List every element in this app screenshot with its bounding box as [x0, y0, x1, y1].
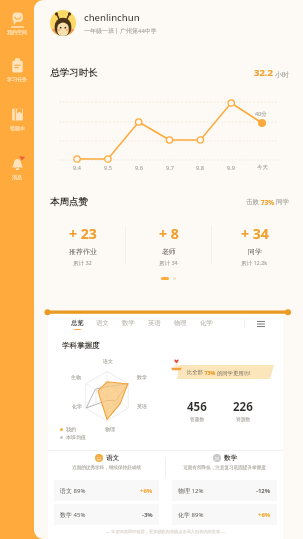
staticText: + 34: [241, 224, 269, 243]
button[interactable]: chenlinchun: [34, 0, 303, 46]
staticText: +6%: [140, 487, 153, 495]
staticText: 40分: [255, 110, 267, 118]
staticText: 推荐作业: [69, 247, 97, 256]
button[interactable]: + 34: [212, 224, 297, 267]
staticText: 英语: [148, 319, 161, 327]
staticText: 语文 89%: [60, 487, 86, 495]
staticText: 语文: [106, 454, 119, 462]
button[interactable]: + 23: [40, 224, 125, 267]
staticText: 9.8: [196, 164, 204, 171]
staticText: 总学习时长: [50, 67, 98, 79]
button[interactable]: 学习任务: [0, 58, 34, 82]
staticText: 数学: [224, 454, 237, 462]
staticText: 近期有所降低，注意复习巩固提升掌握度: [172, 465, 277, 471]
staticText: 比全部: [187, 369, 203, 376]
button[interactable]: 我的空间: [0, 11, 34, 35]
staticText: -3%: [142, 511, 153, 519]
button[interactable]: + 8: [126, 224, 211, 267]
staticText: 一年级一班丨广州第44中学: [84, 27, 157, 35]
button[interactable]: 语文 89%: [54, 480, 159, 501]
staticText: 消息: [12, 174, 22, 180]
button[interactable]: 总览: [66, 314, 88, 334]
staticText: 物理 12%: [178, 487, 204, 495]
staticText: 73%: [203, 369, 217, 376]
button[interactable]: 化学 89%: [172, 504, 277, 525]
staticText: + 8: [159, 224, 179, 243]
staticText: 累计 32: [73, 259, 92, 267]
staticText: — 这里是底部的推荐，更多精彩内容请点击进入列表内容查看 —: [106, 529, 226, 535]
button[interactable]: Menu: [250, 314, 272, 334]
button[interactable]: 英语: [143, 314, 165, 334]
staticText: 226: [233, 399, 253, 415]
staticText: 9.9: [227, 164, 235, 171]
staticText: 化学 89%: [178, 511, 204, 519]
staticText: 累计 12.2k: [241, 259, 268, 267]
staticText: 总览: [71, 319, 84, 327]
staticText: 生物: [71, 374, 81, 380]
staticText: 9.7: [166, 164, 174, 171]
staticText: 小时: [275, 70, 289, 79]
staticText: 9.4: [73, 164, 81, 171]
staticText: 本班均值: [66, 434, 86, 440]
button[interactable]: 数学: [117, 314, 139, 334]
staticText: 今天: [257, 164, 268, 171]
staticText: 9.5: [104, 164, 112, 171]
staticText: 9.6: [135, 164, 143, 171]
staticText: chenlinchun: [84, 11, 140, 24]
staticText: 456: [187, 399, 207, 415]
button[interactable]: 数学 45%: [54, 504, 159, 525]
staticText: 同学: [248, 247, 262, 256]
staticText: 学科掌握度: [62, 341, 100, 350]
staticText: 物理: [174, 319, 187, 327]
staticText: 32.2: [254, 66, 273, 79]
staticText: 73%: [259, 198, 276, 207]
staticText: 答题数: [190, 416, 205, 422]
button[interactable]: 物理: [169, 314, 191, 334]
staticText: 数学: [122, 319, 135, 327]
staticText: 我的空间: [7, 29, 27, 35]
staticText: 数学 45%: [60, 511, 86, 519]
staticText: 物理: [105, 426, 115, 432]
staticText: 学习任务: [7, 76, 27, 82]
staticText: 本周点赞: [50, 196, 88, 208]
staticText: 我的: [66, 426, 76, 432]
staticText: +6%: [258, 511, 271, 519]
button[interactable]: 消息: [0, 156, 34, 180]
staticText: 资源数: [236, 416, 251, 422]
staticText: 的同学更用功!: [217, 369, 251, 376]
staticText: -12%: [256, 487, 271, 495]
staticText: 错题本: [10, 125, 25, 131]
button[interactable]: 物理 12%: [172, 480, 277, 501]
staticText: 数学: [137, 374, 147, 380]
staticText: 同学: [276, 198, 289, 206]
staticText: 化学: [72, 403, 82, 409]
button[interactable]: 语文: [91, 314, 113, 334]
staticText: 老师: [162, 247, 176, 256]
button[interactable]: 错题本: [0, 107, 34, 131]
staticText: 语文: [96, 319, 109, 327]
staticText: 击败: [246, 198, 259, 206]
staticText: + 23: [69, 224, 97, 243]
staticText: 英语: [137, 403, 147, 409]
staticText: 化学: [200, 319, 213, 327]
staticText: 近期的优秀学科，继续保持好成绩: [54, 465, 159, 471]
button[interactable]: 化学: [195, 314, 217, 334]
staticText: 语文: [103, 358, 113, 364]
staticText: 累计 34: [159, 259, 178, 267]
